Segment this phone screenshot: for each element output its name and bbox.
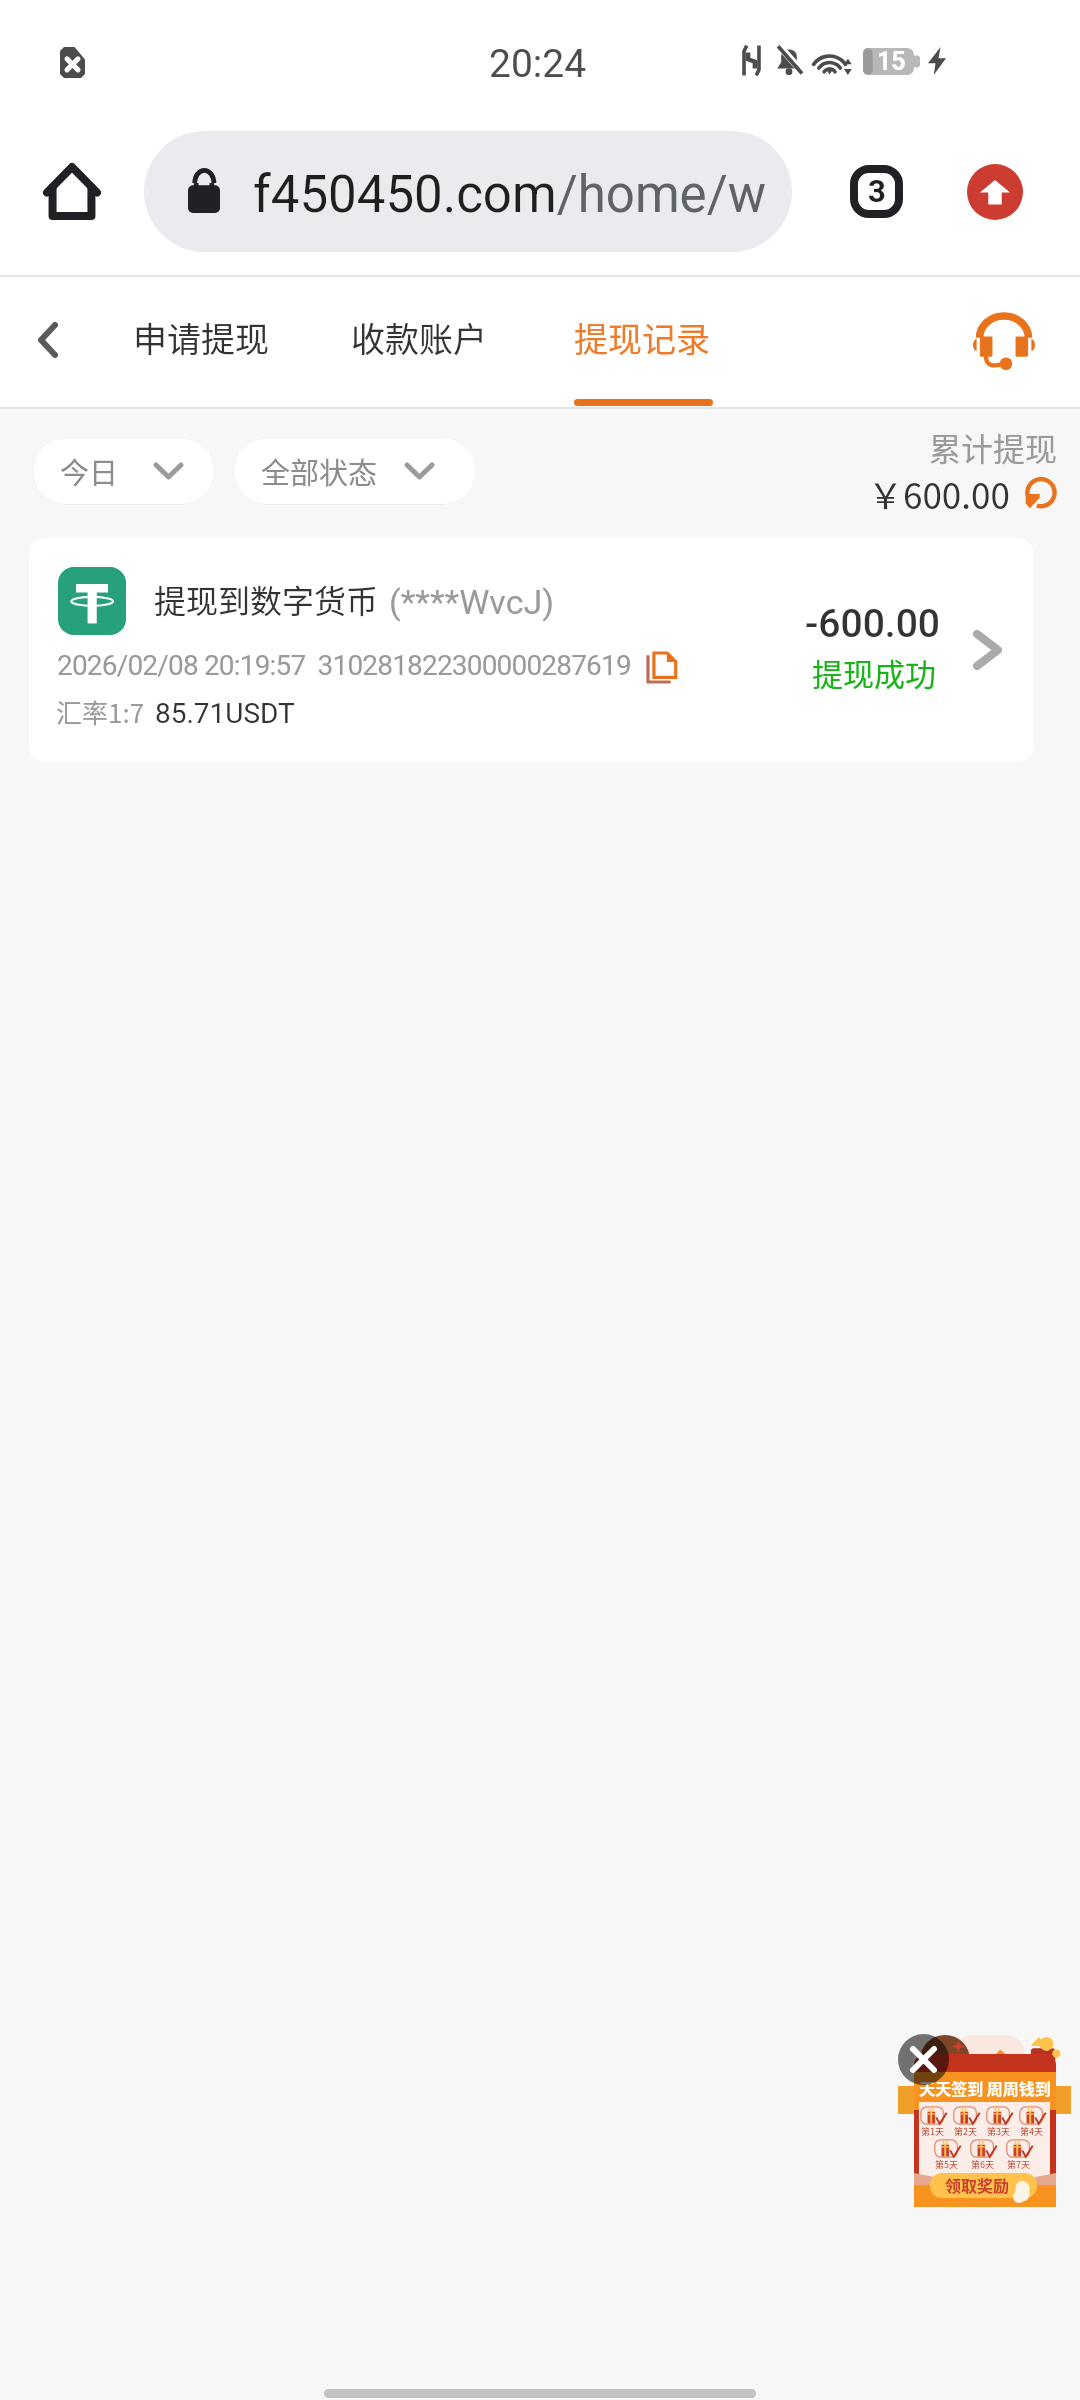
button[interactable]: 提现记录: [554, 277, 730, 397]
staticText: f450450.com/home/w: [253, 165, 767, 225]
button[interactable]: 提现到数字货币: [29, 538, 1034, 762]
button[interactable]: Close promotion: [898, 2034, 949, 2085]
staticText: 第3天: [986, 2125, 1011, 2138]
staticText: (****WvcJ): [389, 582, 555, 622]
staticText: ￥600.00: [868, 468, 1010, 519]
button[interactable]: 全部状态: [233, 437, 477, 505]
staticText: 累计提现: [858, 424, 1057, 470]
staticText: 收款账户: [351, 313, 487, 362]
staticText: -600.00: [779, 601, 940, 647]
staticText: 第2天: [953, 2125, 978, 2138]
button[interactable]: Customer service: [958, 295, 1050, 387]
staticText: 第4天: [1019, 2125, 1044, 2138]
staticText: 申请提现: [133, 313, 269, 362]
staticText: 天天签到 周周钱到: [914, 2076, 1056, 2099]
staticText: 85.71USDT: [155, 697, 295, 730]
button[interactable]: Update browser: [967, 164, 1023, 220]
button[interactable]: Copy transaction id: [646, 651, 679, 684]
button[interactable]: Refresh: [1024, 477, 1058, 511]
staticText: 今日: [60, 450, 119, 492]
button[interactable]: 今日: [32, 437, 215, 505]
staticText: 提现记录: [574, 313, 710, 362]
button[interactable]: 收款账户: [331, 277, 507, 397]
button[interactable]: f450450.com/home/w: [144, 131, 792, 252]
button[interactable]: [914, 2054, 1056, 2207]
staticText: 汇率1:7: [56, 693, 145, 731]
staticText: 2026/02/08 20:19:57 31028182230000028761…: [57, 649, 631, 682]
button[interactable]: Home: [32, 148, 112, 236]
button[interactable]: 申请提现: [113, 277, 289, 397]
staticText: 提现到数字货币: [154, 576, 379, 622]
staticText: 第5天: [934, 2158, 959, 2171]
staticText: 第1天: [920, 2125, 945, 2138]
staticText: 提现成功: [806, 650, 936, 695]
staticText: 全部状态: [261, 450, 378, 492]
button[interactable]: Back: [10, 302, 86, 378]
button[interactable]: Tabs: [854, 169, 899, 214]
staticText: 第6天: [970, 2158, 995, 2171]
staticText: 15: [877, 47, 906, 74]
staticText: 第7天: [1006, 2158, 1031, 2171]
staticText: 20:24: [489, 41, 587, 87]
staticText: 领取奖励: [945, 2173, 1010, 2196]
button[interactable]: 领取奖励: [930, 2173, 1037, 2198]
staticText: 3: [868, 173, 886, 209]
